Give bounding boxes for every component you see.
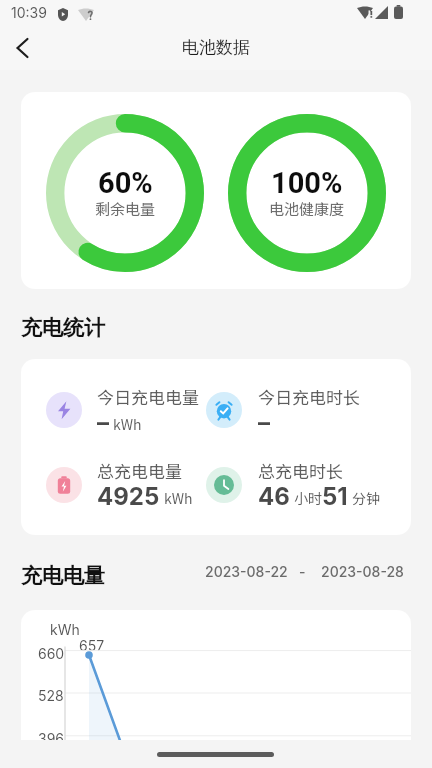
staticText: kWh bbox=[113, 414, 142, 434]
staticText: 100% bbox=[271, 166, 343, 200]
staticText: 今日充电时长 bbox=[258, 384, 360, 409]
staticText: 充电统计 bbox=[21, 315, 105, 341]
staticText: 分钟 bbox=[352, 488, 380, 508]
staticText: 10:39 bbox=[11, 4, 47, 21]
staticText: – bbox=[258, 408, 270, 437]
button[interactable]: Back bbox=[0, 26, 44, 70]
staticText: 小时 bbox=[294, 488, 322, 508]
staticText: 51 bbox=[322, 482, 348, 511]
staticText: 46 bbox=[258, 482, 290, 511]
staticText: 657 bbox=[79, 637, 105, 654]
staticText: 总充电时长 bbox=[258, 458, 343, 483]
staticText: 今日充电电量 bbox=[97, 384, 199, 409]
staticText: 总充电电量 bbox=[97, 458, 182, 483]
staticText: 2023-08-28 bbox=[321, 563, 404, 580]
staticText: 4925 bbox=[97, 482, 160, 511]
staticText: 电池健康度 bbox=[269, 198, 345, 220]
staticText: – bbox=[97, 408, 109, 437]
staticText: 396 bbox=[38, 730, 65, 740]
staticText: - bbox=[299, 563, 306, 580]
staticText: 2023-08-22 bbox=[205, 563, 288, 580]
staticText: 电池数据 bbox=[182, 37, 250, 58]
staticText: 660 bbox=[38, 645, 65, 662]
staticText: 528 bbox=[38, 687, 64, 704]
staticText: 60% bbox=[98, 166, 153, 200]
staticText: kWh bbox=[164, 488, 193, 508]
staticText: 剩余电量 bbox=[95, 198, 156, 220]
staticText: 充电电量 bbox=[21, 563, 105, 589]
staticText: kWh bbox=[50, 621, 80, 638]
